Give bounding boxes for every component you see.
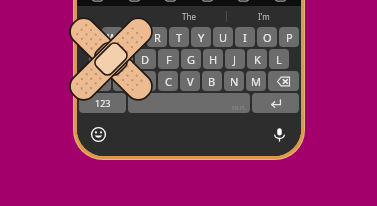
button[interactable]: P: [279, 27, 299, 47]
button[interactable]: L: [269, 49, 289, 69]
staticText: C: [165, 74, 172, 89]
button[interactable]: Z: [113, 71, 134, 91]
staticText: M: [251, 74, 261, 89]
button[interactable]: Theme: [128, 0, 141, 4]
staticText: O: [263, 30, 272, 45]
staticText: S: [119, 52, 126, 67]
button[interactable]: Stickers: [201, 0, 214, 4]
staticText: N: [230, 74, 239, 89]
staticText: Z: [120, 74, 127, 89]
staticText: D: [141, 52, 150, 67]
button[interactable]: N: [224, 71, 244, 91]
button[interactable]: Q: [79, 27, 100, 47]
staticText: I'm: [258, 11, 270, 22]
button[interactable]: H: [203, 49, 223, 69]
staticText: Q: [85, 30, 94, 45]
button[interactable]: I'm: [227, 6, 301, 27]
button[interactable]: T: [169, 27, 189, 47]
button[interactable]: I: [235, 27, 255, 47]
staticText: J: [233, 52, 237, 67]
button[interactable]: The: [152, 6, 226, 27]
staticText: K: [254, 52, 261, 67]
button[interactable]: A: [89, 49, 110, 69]
staticText: B: [208, 74, 216, 89]
button[interactable]: Voice input: [271, 126, 288, 143]
staticText: T: [176, 30, 183, 45]
staticText: U: [219, 30, 228, 45]
other: Bandage: [57, 5, 165, 113]
button[interactable]: GIF: [237, 0, 250, 4]
staticText: G: [187, 52, 196, 67]
button[interactable]: S: [112, 49, 133, 69]
staticText: F: [166, 52, 172, 67]
button[interactable]: More: [274, 0, 287, 4]
button[interactable]: F: [158, 49, 179, 69]
button[interactable]: R: [147, 27, 167, 47]
button[interactable]: M: [246, 71, 266, 91]
button[interactable]: Clipboard: [164, 0, 177, 4]
staticText: A: [96, 52, 104, 67]
button[interactable]: [77, 6, 152, 27]
staticText: P: [286, 30, 293, 45]
button[interactable]: C: [158, 71, 178, 91]
staticText: X: [143, 74, 150, 89]
button[interactable]: Backspace: [268, 71, 299, 91]
staticText: 123: [95, 97, 111, 109]
button[interactable]: Emoji: [90, 126, 107, 143]
button[interactable]: 123: [79, 93, 126, 113]
button[interactable]: J: [225, 49, 245, 69]
button[interactable]: K: [247, 49, 267, 69]
button[interactable]: U: [213, 27, 233, 47]
button[interactable]: Space: [128, 93, 250, 113]
staticText: L: [276, 52, 282, 67]
button[interactable]: Y: [191, 27, 211, 47]
staticText: H: [209, 52, 218, 67]
button[interactable]: B: [202, 71, 222, 91]
button[interactable]: D: [135, 49, 156, 69]
staticText: R: [154, 30, 161, 45]
button[interactable]: Enter: [252, 93, 299, 113]
staticText: EN PL: [232, 105, 246, 112]
button[interactable]: V: [180, 71, 200, 91]
staticText: W: [107, 30, 118, 45]
staticText: E: [132, 30, 139, 45]
button[interactable]: O: [257, 27, 277, 47]
button[interactable]: Shift: [79, 71, 111, 91]
button[interactable]: E: [125, 27, 145, 47]
button[interactable]: W: [102, 27, 123, 47]
button[interactable]: G: [181, 49, 201, 69]
button[interactable]: Settings: [91, 0, 104, 4]
staticText: The: [182, 11, 196, 22]
staticText: I: [243, 30, 247, 45]
staticText: Y: [198, 30, 205, 45]
button[interactable]: X: [136, 71, 156, 91]
staticText: V: [187, 74, 194, 89]
